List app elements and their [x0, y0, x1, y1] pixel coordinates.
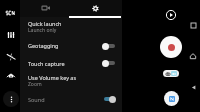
button[interactable]: Geotagging	[20, 37, 122, 54]
button[interactable]: Back	[186, 80, 200, 94]
staticText: Geotagging	[28, 42, 102, 49]
staticText: Use Volume key as	[28, 74, 77, 81]
button[interactable]: Exposure	[0, 27, 22, 43]
button[interactable]: More options	[3, 91, 19, 107]
button[interactable]: Record video	[163, 7, 179, 23]
button[interactable]: Touch capture	[20, 54, 122, 72]
staticText: Zoom	[28, 81, 42, 88]
button[interactable]: Quick launch	[20, 17, 122, 37]
staticText: Quick launch	[28, 20, 62, 27]
button[interactable]: Flash off	[0, 49, 22, 65]
button[interactable]: General settings	[80, 0, 110, 16]
button[interactable]: Shutter	[160, 36, 182, 58]
button[interactable]: Recents	[186, 18, 200, 32]
button[interactable]: Sound	[20, 90, 122, 108]
button[interactable]: Scene mode	[0, 5, 22, 21]
staticText: Sound	[28, 96, 102, 103]
button[interactable]: Switch camera mode	[163, 70, 179, 77]
staticText: Touch capture	[28, 60, 102, 67]
button[interactable]: Use Volume key as	[20, 72, 122, 90]
button[interactable]: Gallery	[164, 91, 179, 106]
button[interactable]: Switch camera	[0, 69, 22, 85]
button[interactable]: Home	[186, 49, 200, 63]
button[interactable]: Video settings	[31, 0, 61, 16]
staticText: Launch only	[28, 27, 57, 34]
